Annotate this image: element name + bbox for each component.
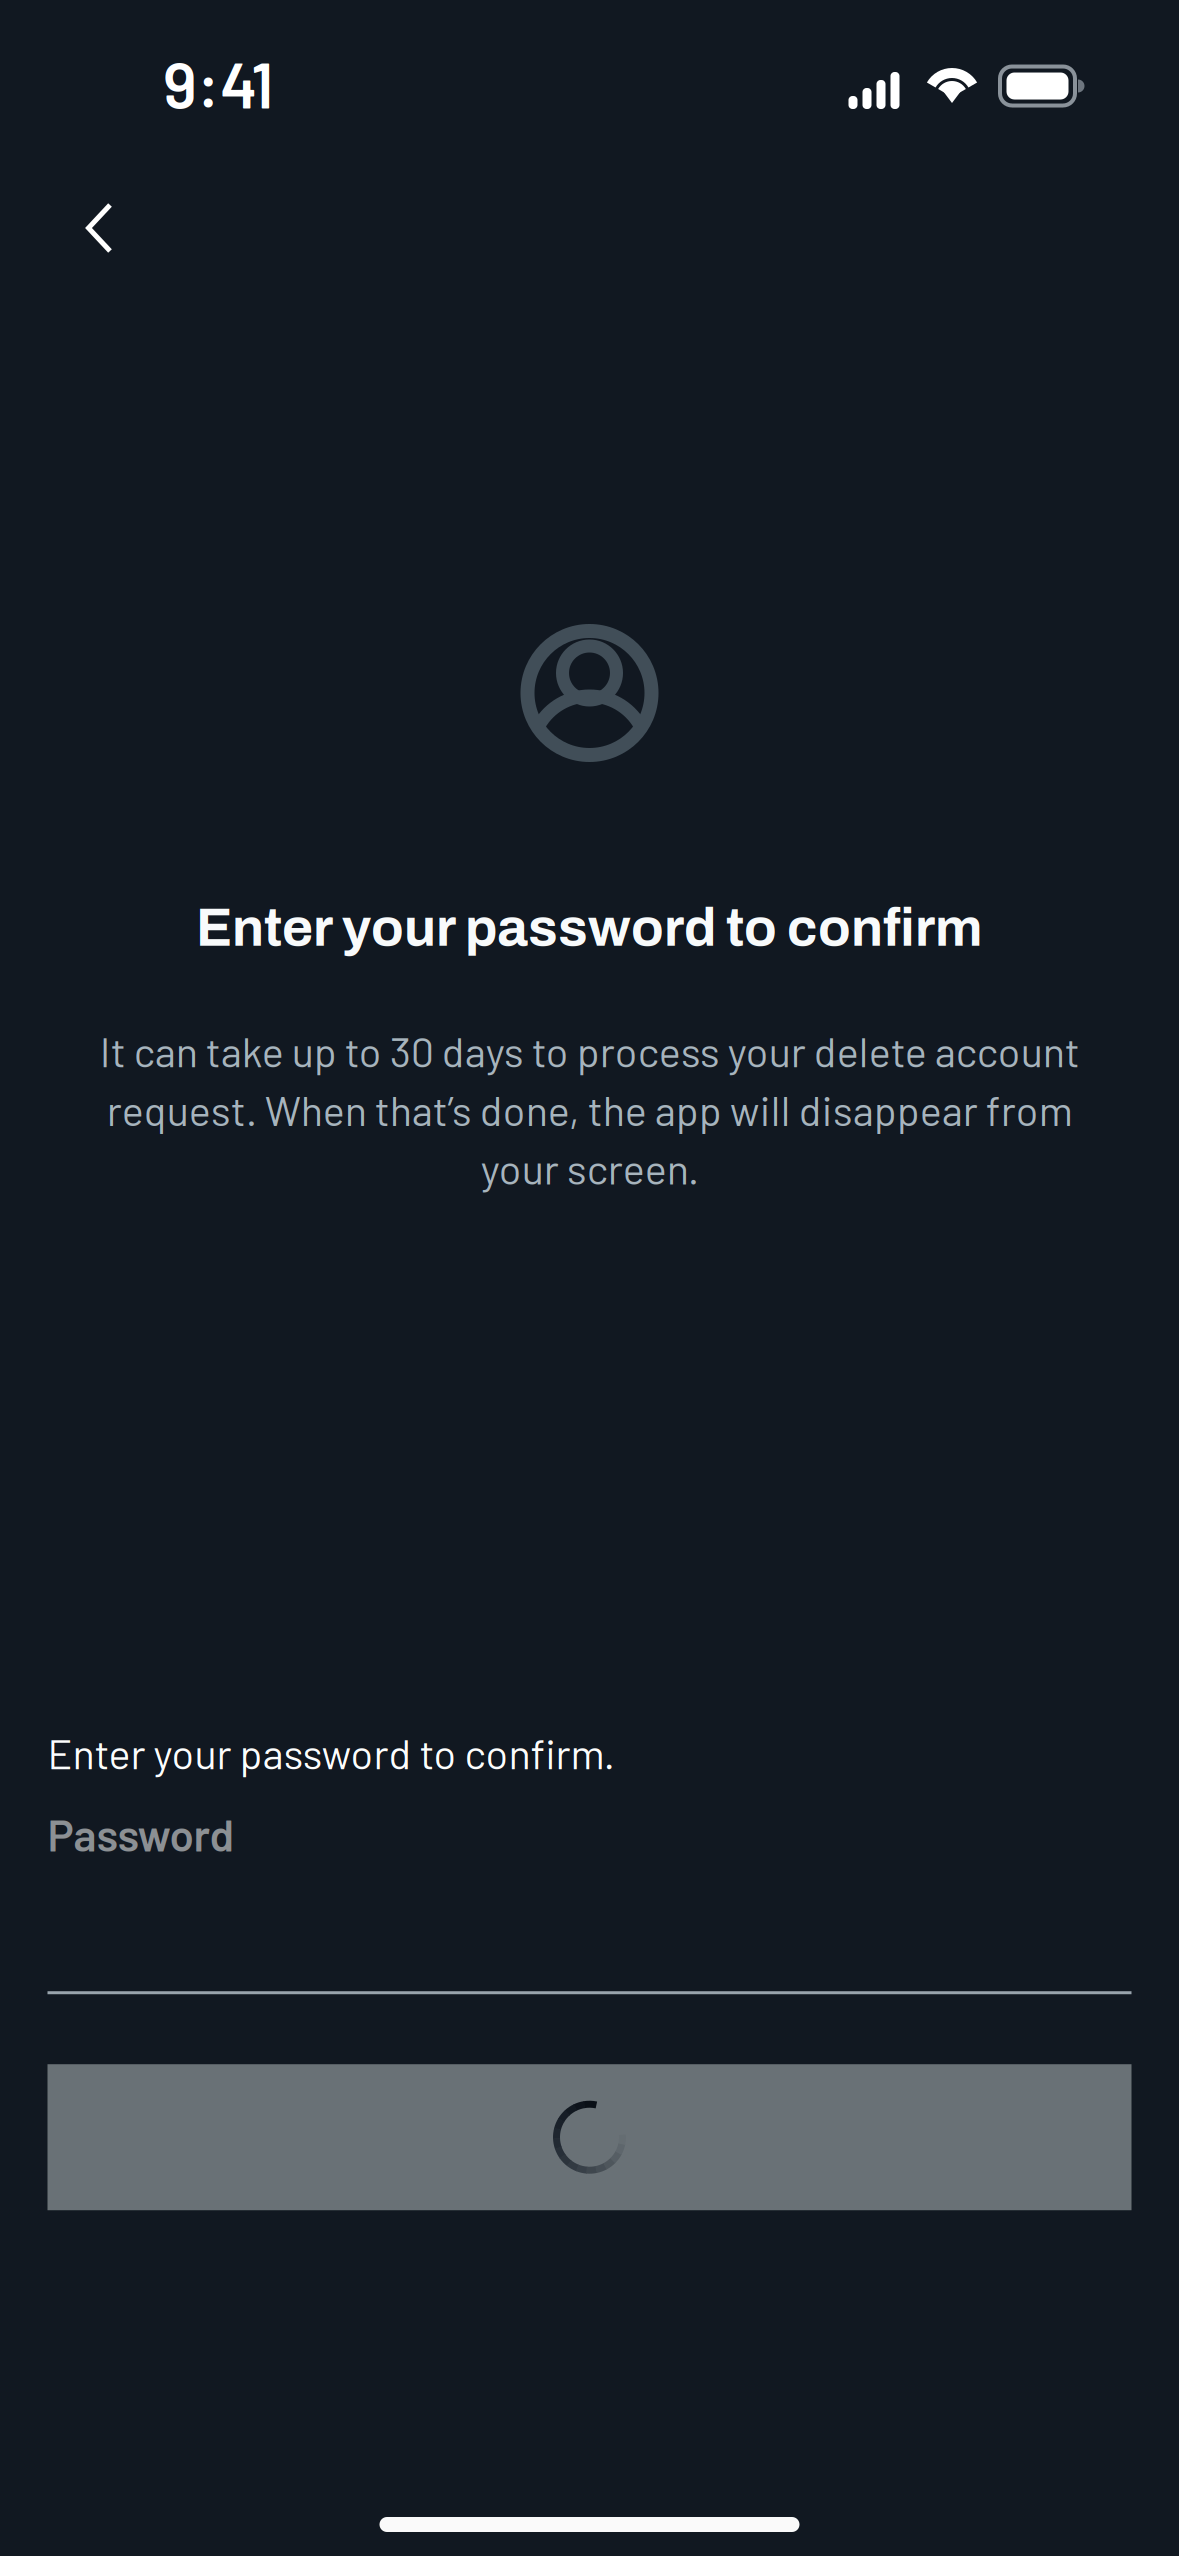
staticText: It can take up to 30 days to process you… xyxy=(99,1026,1079,1193)
button[interactable]: Password xyxy=(47,1807,1131,1994)
staticText: Enter your password to confirm. xyxy=(47,1728,614,1777)
button[interactable]: Submitting xyxy=(47,2064,1131,2210)
staticText: Enter your password to confirm xyxy=(196,899,983,957)
staticText: 9:41 xyxy=(163,45,274,121)
button[interactable]: Back xyxy=(0,177,157,279)
staticText: Password xyxy=(47,1807,234,1860)
